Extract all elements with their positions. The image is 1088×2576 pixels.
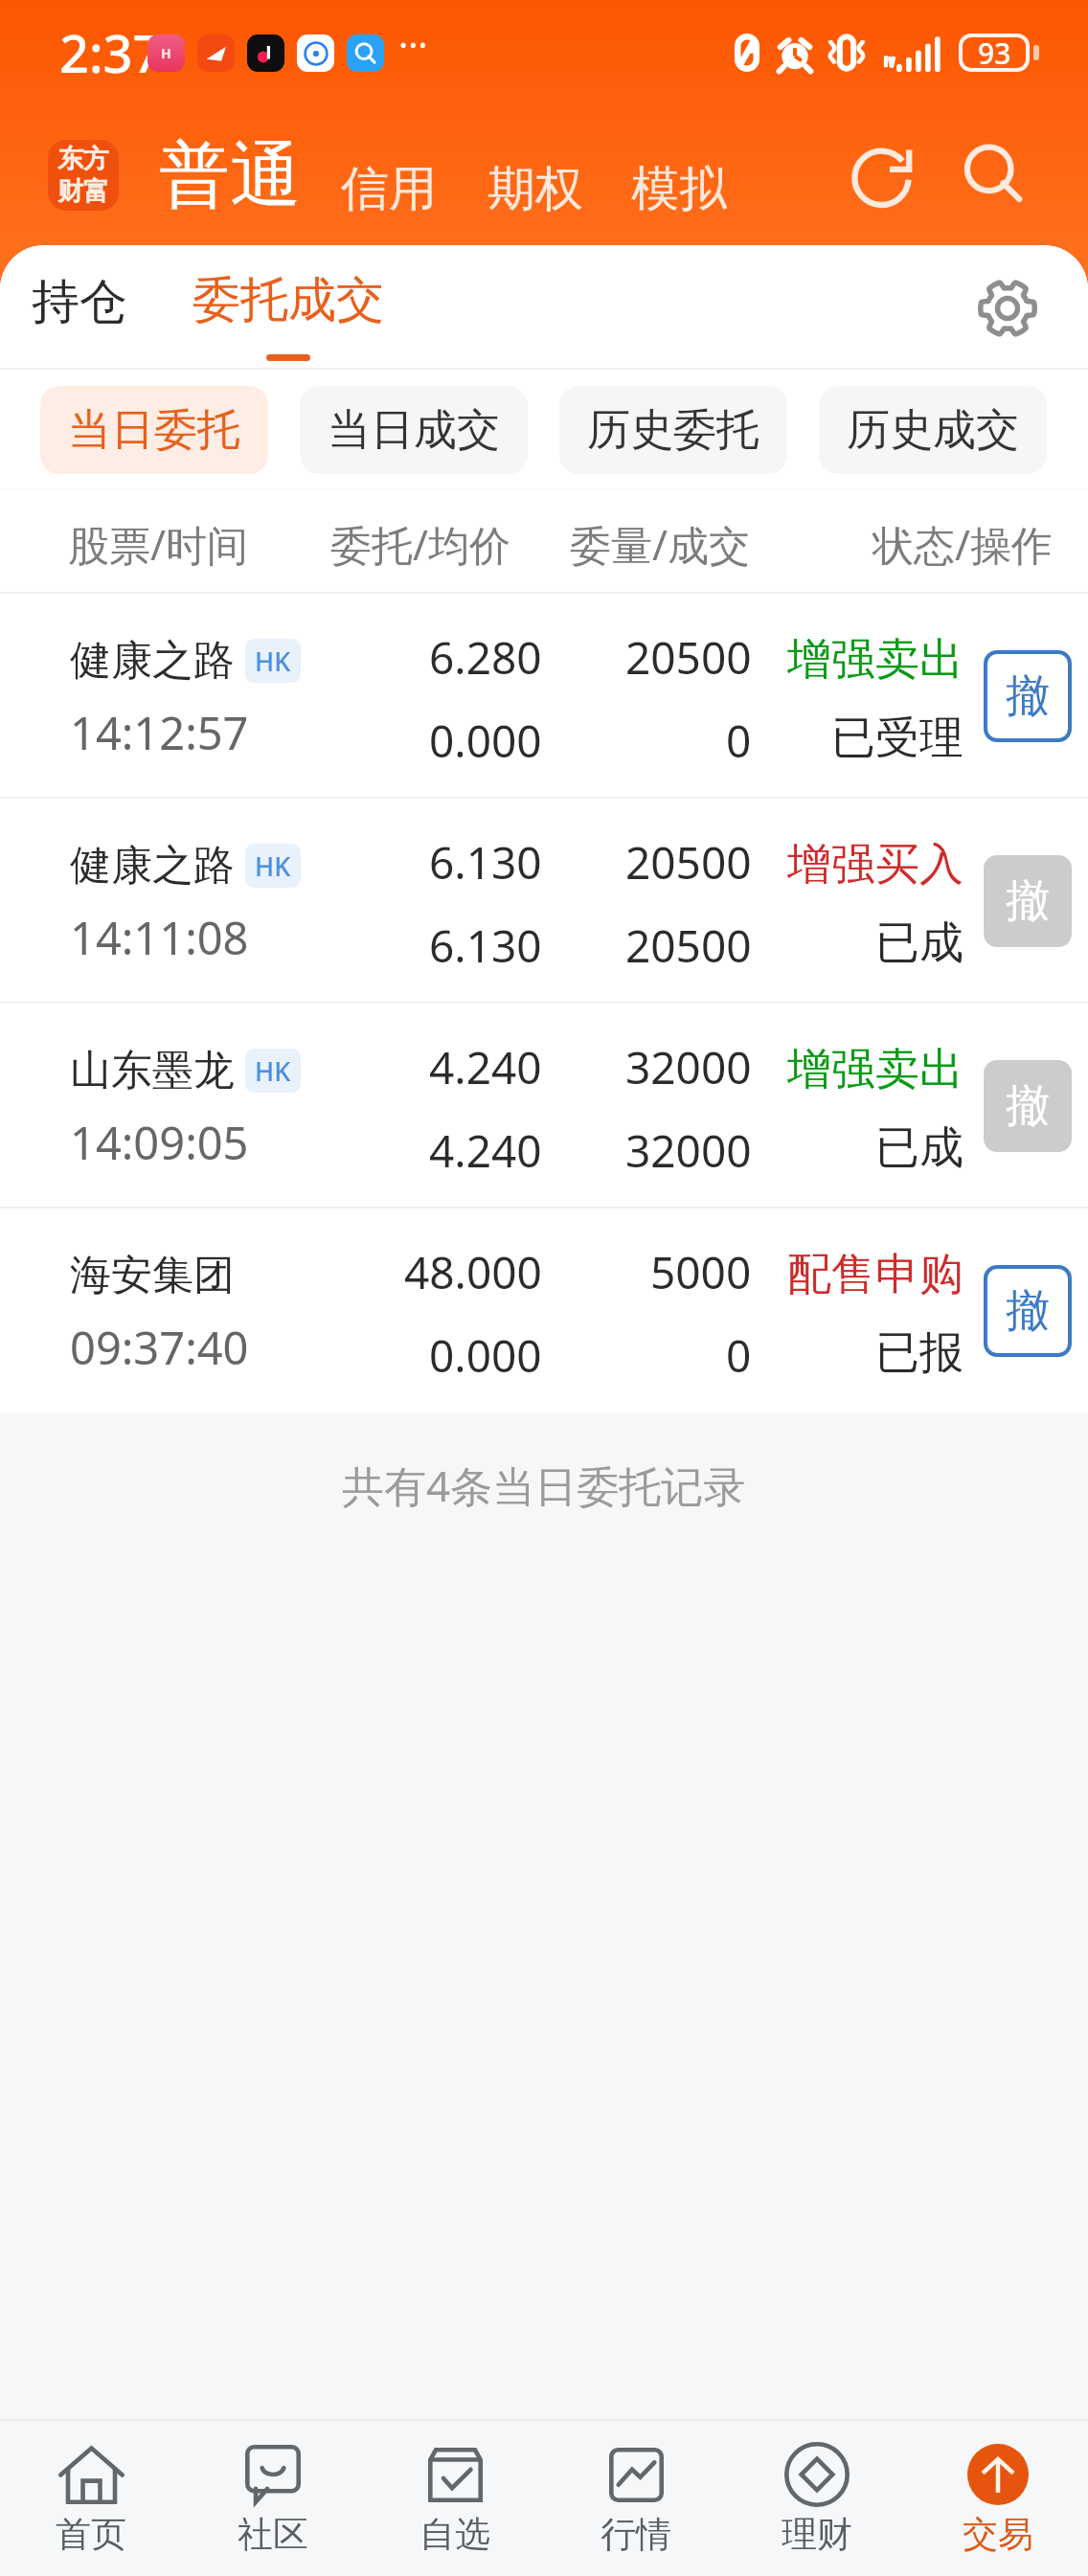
staticText: 32000 <box>625 1037 752 1097</box>
staticText: 已成 <box>875 915 963 971</box>
staticText: 历史成交 <box>847 403 1019 458</box>
button[interactable]: 理财 <box>726 2421 907 2576</box>
staticText: 14:11:08 <box>70 907 249 968</box>
staticText: HK <box>255 848 291 884</box>
button[interactable]: 历史成交 <box>819 386 1047 474</box>
button[interactable]: 普通 <box>159 131 301 220</box>
staticText: 理财 <box>782 2512 852 2557</box>
staticText: 当日委托 <box>68 403 240 458</box>
staticText: 20500 <box>625 832 752 893</box>
staticText: 6.130 <box>429 915 542 976</box>
staticText: 5000 <box>650 1242 752 1302</box>
staticText: 2:37 <box>59 17 163 88</box>
staticText: 委托成交 <box>193 270 384 330</box>
staticText: 93 <box>978 34 1011 72</box>
button[interactable]: 期权 <box>487 159 583 219</box>
button[interactable]: 信用 <box>341 159 437 219</box>
staticText: 委托/均价 <box>330 516 510 573</box>
staticText: 增强买入 <box>787 837 963 893</box>
staticText: 山东墨龙 <box>70 1045 235 1096</box>
staticText: 健康之路 <box>70 840 235 892</box>
staticText: HK <box>255 1053 291 1089</box>
staticText: 14:09:05 <box>70 1112 249 1173</box>
staticText: 行情 <box>601 2512 671 2557</box>
button[interactable]: Refresh <box>843 137 919 214</box>
button[interactable]: 山东墨龙 <box>0 1004 1088 1209</box>
button[interactable]: Search <box>956 137 1032 214</box>
staticText: 委量/成交 <box>570 516 750 573</box>
staticText: 0.000 <box>429 711 542 771</box>
staticText: 撤 <box>1006 1078 1050 1134</box>
staticText: 持仓 <box>32 272 127 332</box>
staticText: 6.130 <box>429 832 542 893</box>
staticText: 4.240 <box>429 1037 542 1097</box>
staticText: 首页 <box>56 2512 126 2557</box>
staticText: 48.000 <box>404 1242 542 1302</box>
button[interactable]: 当日委托 <box>40 386 268 474</box>
button[interactable]: 撤 <box>984 650 1072 742</box>
button[interactable]: 撤 <box>984 855 1072 947</box>
staticText: 海安集团 <box>70 1250 235 1301</box>
staticText: 期权 <box>487 159 583 219</box>
staticText: 共有4条当日委托记录 <box>342 1457 746 1514</box>
staticText: 增强卖出 <box>787 1042 963 1097</box>
staticText: 09:37:40 <box>70 1317 249 1378</box>
button[interactable]: 撤 <box>984 1265 1072 1357</box>
staticText: 模拟 <box>631 159 727 219</box>
button[interactable]: 交易 <box>907 2421 1088 2576</box>
staticText: 信用 <box>341 159 437 219</box>
staticText: 20500 <box>625 627 752 688</box>
button[interactable]: 行情 <box>545 2421 726 2576</box>
staticText: 撤 <box>1006 668 1050 724</box>
staticText: 20500 <box>625 915 752 976</box>
button[interactable]: 海安集团 <box>0 1209 1088 1413</box>
staticText: 撤 <box>1006 1283 1050 1339</box>
staticText: ··· <box>398 19 428 69</box>
staticText: 财富 <box>57 175 109 208</box>
staticText: 增强卖出 <box>787 632 963 688</box>
staticText: 配售申购 <box>787 1247 963 1302</box>
button[interactable]: 自选 <box>364 2421 545 2576</box>
button[interactable]: 模拟 <box>631 159 727 219</box>
button[interactable]: 持仓 <box>32 245 127 368</box>
staticText: 东方 <box>57 143 109 175</box>
staticText: 14:12:57 <box>70 702 249 763</box>
staticText: 交易 <box>963 2512 1033 2557</box>
staticText: 0 <box>726 1325 752 1386</box>
staticText: 历史委托 <box>587 403 759 458</box>
button[interactable]: 健康之路 <box>0 799 1088 1004</box>
staticText: 健康之路 <box>70 635 235 687</box>
staticText: 状态/操作 <box>873 516 1053 573</box>
staticText: HK <box>255 644 291 679</box>
button[interactable]: 委托成交 <box>193 245 384 368</box>
button[interactable]: 当日成交 <box>300 386 528 474</box>
staticText: 自选 <box>419 2512 490 2557</box>
staticText: 已成 <box>875 1120 963 1176</box>
staticText: 社区 <box>238 2512 308 2557</box>
staticText: 6.280 <box>429 627 542 688</box>
staticText: 32000 <box>625 1120 752 1181</box>
staticText: 已报 <box>875 1325 963 1381</box>
button[interactable]: 首页 <box>0 2421 182 2576</box>
staticText: 普通 <box>159 131 301 220</box>
button[interactable]: 撤 <box>984 1060 1072 1152</box>
button[interactable]: 社区 <box>182 2421 364 2576</box>
staticText: 撤 <box>1006 873 1050 929</box>
staticText: 0.000 <box>429 1325 542 1386</box>
staticText: 股票/时间 <box>68 516 248 573</box>
button[interactable]: Settings <box>971 272 1044 345</box>
staticText: 0 <box>726 711 752 771</box>
staticText: 4.240 <box>429 1120 542 1181</box>
button[interactable]: 健康之路 <box>0 594 1088 799</box>
staticText: 当日成交 <box>328 403 500 458</box>
staticText: 已受理 <box>831 711 963 766</box>
button[interactable]: 历史委托 <box>559 386 787 474</box>
staticText: H <box>161 44 171 62</box>
